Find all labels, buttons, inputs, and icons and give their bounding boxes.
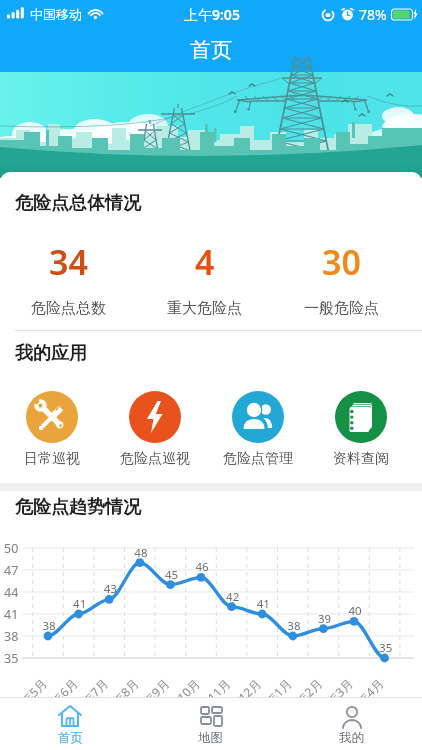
staticText: 我的应用 [15,342,87,365]
button[interactable]: 4 [136,239,273,318]
staticText: 日常巡视 [24,450,80,468]
staticText: 78% [359,5,387,24]
staticText: 首页 [190,37,232,63]
staticText: 首页 [58,730,83,746]
button[interactable]: 日常巡视 [0,391,103,468]
staticText: 危险点巡视 [120,450,190,468]
button[interactable]: 地图 [140,698,281,750]
staticText: 一般危险点 [304,299,379,318]
button[interactable]: 资料查阅 [309,391,412,468]
staticText: 危险点总数 [31,299,106,318]
button[interactable]: 危险点管理 [206,391,309,468]
staticText: 危险点总体情况 [15,192,141,215]
staticText: 地图 [198,730,223,746]
staticText: 34 [49,239,88,285]
staticText: 危险点管理 [223,450,293,468]
staticText: 4 [195,239,215,285]
button[interactable]: 首页 [0,698,140,750]
button[interactable]: 危险点巡视 [103,391,206,468]
button[interactable]: 我的 [281,698,422,750]
staticText: 危险点趋势情况 [15,496,141,519]
staticText: 中国移动 [30,6,82,22]
button[interactable]: 30 [273,239,410,318]
staticText: 30 [322,239,361,285]
staticText: 资料查阅 [333,450,389,468]
staticText: 上午9:05 [184,5,240,24]
staticText: 我的 [339,730,364,746]
button[interactable]: 34 [0,239,136,318]
staticText: 重大危险点 [167,299,242,318]
